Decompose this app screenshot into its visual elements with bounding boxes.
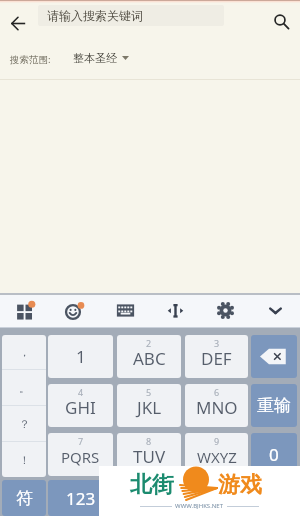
button[interactable]: ？ [2, 406, 46, 441]
button[interactable]: 9 [185, 433, 248, 476]
staticText: 3 [214, 337, 220, 349]
staticText: 5 [146, 386, 152, 398]
button[interactable]: 123 [48, 480, 113, 516]
staticText: 。 [19, 381, 30, 395]
staticText: 北街 [130, 471, 174, 499]
button[interactable] [117, 480, 181, 516]
staticText: WWW.BJHKS.NET [172, 502, 227, 510]
staticText: TUV [133, 445, 166, 468]
button[interactable]: ， [2, 335, 46, 369]
button[interactable]: 重输 [251, 384, 297, 427]
button[interactable]: 3 [185, 335, 248, 378]
staticText: ABC [133, 347, 166, 370]
button[interactable]: 5 [117, 384, 181, 427]
staticText: ， [19, 345, 30, 359]
button[interactable]: Backspace [251, 335, 297, 378]
button[interactable]: Symbols [0, 293, 50, 328]
button[interactable]: 4 [48, 384, 113, 427]
button[interactable]: 0 [251, 433, 297, 476]
button[interactable]: Search [264, 3, 298, 36]
staticText: 7 [78, 435, 84, 447]
staticText: 123 [66, 487, 96, 510]
button[interactable]: ！ [2, 442, 46, 477]
staticText: WXYZ [197, 447, 237, 467]
staticText: 9 [214, 435, 220, 447]
staticText: ！ [19, 453, 30, 467]
button[interactable]: Hide keyboard [250, 293, 300, 328]
staticText: 游戏 [218, 471, 262, 499]
button[interactable]: 7 [48, 433, 113, 476]
button[interactable] [251, 480, 297, 516]
staticText: 搜索范围: [10, 53, 51, 66]
button[interactable]: 请输入搜索关键词 [38, 5, 224, 26]
staticText: JKL [137, 396, 162, 419]
button[interactable]: Back [2, 3, 34, 36]
button[interactable]: Emoji [50, 293, 100, 328]
button[interactable]: 整本圣经 [73, 48, 129, 68]
button[interactable]: 2 [117, 335, 181, 378]
button[interactable]: Keyboard layout [100, 293, 150, 328]
staticText: MNO [196, 396, 238, 419]
staticText: 6 [214, 386, 220, 398]
button[interactable]: Settings [200, 293, 250, 328]
staticText: 4 [78, 386, 84, 398]
button[interactable]: 符 [2, 480, 46, 516]
staticText: 重输 [257, 395, 291, 416]
other: Backspace [260, 348, 288, 365]
staticText: PQRS [61, 447, 100, 467]
staticText: 整本圣经 [73, 51, 117, 65]
staticText: 请输入搜索关键词 [47, 8, 143, 23]
staticText: ？ [19, 417, 30, 431]
staticText: 2 [146, 337, 152, 349]
button[interactable]: Move cursor [150, 293, 200, 328]
staticText: 符 [16, 488, 33, 509]
staticText: 0 [269, 443, 279, 466]
button[interactable]: 1 [48, 335, 113, 378]
button[interactable]: 。 [2, 370, 46, 405]
button[interactable] [185, 480, 248, 516]
staticText: GHI [65, 396, 96, 419]
button[interactable]: 8 [117, 433, 181, 476]
button[interactable]: 6 [185, 384, 248, 427]
staticText: DEF [201, 347, 232, 370]
staticText: 8 [146, 435, 152, 447]
staticText: 1 [76, 345, 86, 368]
